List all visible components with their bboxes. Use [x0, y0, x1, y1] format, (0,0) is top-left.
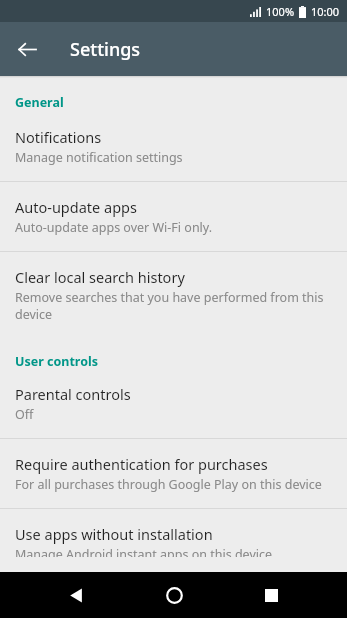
staticText: Manage notification settings	[15, 149, 183, 166]
staticText: Require authentication for purchases	[15, 454, 268, 474]
staticText: General	[15, 94, 64, 111]
staticText: For all purchases through Google Play on…	[15, 476, 322, 493]
button[interactable]: Require authentication for purchases	[0, 439, 347, 508]
button[interactable]: Auto-update apps	[0, 182, 347, 251]
button[interactable]: Use apps without installation	[0, 509, 347, 572]
staticText: Auto-update apps	[15, 197, 137, 217]
button[interactable]: Clear local search history	[0, 252, 347, 337]
staticText: 10:00	[311, 4, 340, 19]
staticText: Auto-update apps over Wi-Fi only.	[15, 219, 213, 236]
button[interactable]: Home	[152, 573, 196, 617]
button[interactable]: Notifications	[0, 113, 347, 181]
staticText: Parental controls	[15, 384, 131, 404]
staticText: Off	[15, 406, 34, 423]
staticText: Settings	[70, 37, 141, 62]
staticText: Notifications	[15, 127, 102, 147]
staticText: Clear local search history	[15, 267, 185, 287]
button[interactable]: Parental controls	[0, 372, 347, 438]
button[interactable]: Back	[8, 30, 46, 68]
staticText: User controls	[15, 353, 98, 370]
staticText: Manage Android instant apps on this devi…	[15, 546, 273, 557]
staticText: Use apps without installation	[15, 524, 213, 544]
button[interactable]: Back	[54, 573, 98, 617]
button[interactable]: Recent apps	[249, 573, 293, 617]
staticText: 100%	[266, 4, 295, 19]
staticText: Remove searches that you have performed …	[15, 289, 333, 322]
